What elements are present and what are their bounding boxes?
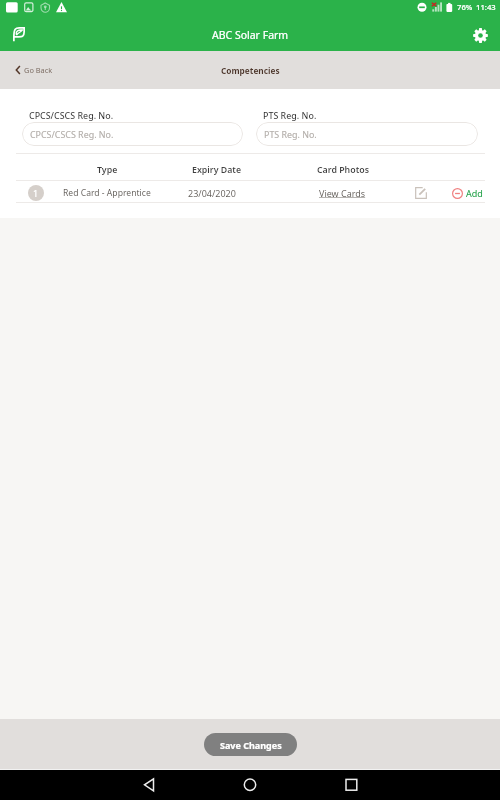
staticText: Add	[466, 187, 483, 199]
staticText: 76%	[457, 2, 473, 12]
staticText: 11:43	[476, 2, 496, 12]
staticText: View Cards	[319, 187, 366, 199]
staticText: PTS Reg. No.	[263, 109, 317, 121]
staticText: Expiry Date	[192, 164, 242, 176]
button[interactable]: PTS Reg. No.	[256, 122, 478, 146]
staticText: Red Card - Apprentice	[63, 187, 151, 199]
staticText: 1	[33, 187, 39, 199]
staticText: ABC Solar Farm	[212, 28, 289, 42]
staticText: Competencies	[221, 65, 280, 76]
staticText: 23/04/2020	[188, 187, 236, 199]
staticText: Card Photos	[317, 164, 369, 176]
button[interactable]: CPCS/CSCS Reg. No.	[22, 122, 243, 146]
button[interactable]: Go Back	[15, 65, 53, 75]
staticText: Save Changes	[220, 739, 282, 751]
button[interactable]: Edit	[414, 186, 428, 200]
button[interactable]: View Cards	[319, 187, 366, 199]
staticText: PTS Reg. No.	[264, 128, 317, 140]
button[interactable]: Home	[8, 23, 32, 47]
button[interactable]: Settings	[468, 23, 492, 47]
button[interactable]: Save Changes	[204, 733, 297, 756]
staticText: CPCS/CSCS Reg. No.	[29, 109, 114, 121]
staticText: CPCS/CSCS Reg. No.	[30, 128, 114, 140]
staticText: Type	[97, 164, 118, 176]
staticText: Go Back	[24, 65, 53, 75]
button[interactable]: Add	[452, 187, 483, 199]
